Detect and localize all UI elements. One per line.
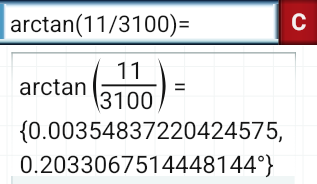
button[interactable]: Expression input: [0, 0, 278, 45]
button[interactable]: Result: [11, 52, 296, 184]
button[interactable]: Clear: [278, 0, 317, 45]
